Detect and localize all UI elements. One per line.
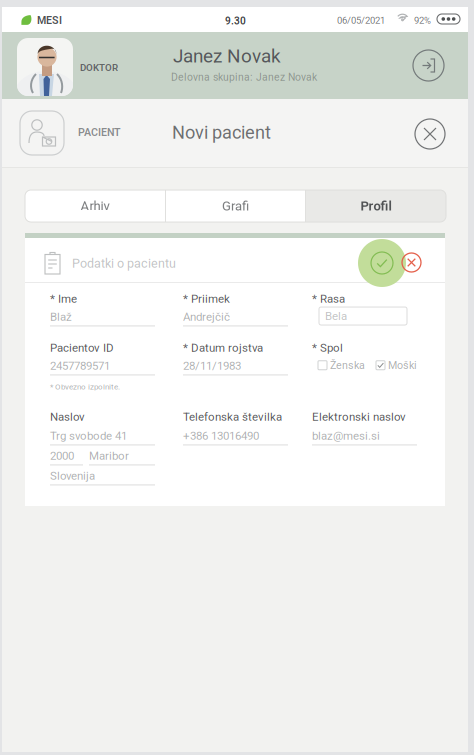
staticText: Maribor — [89, 449, 129, 462]
staticText: * Ime — [50, 292, 77, 305]
staticText: * Priimek — [183, 292, 230, 305]
staticText: DOKTOR — [80, 62, 118, 73]
staticText: * Rasa — [312, 292, 345, 305]
button[interactable]: Ženska — [318, 359, 365, 371]
staticText: 9.30 — [225, 15, 246, 27]
staticText: Bela — [325, 309, 347, 323]
staticText: Andrejčič — [183, 310, 230, 323]
staticText: Profil — [360, 198, 391, 214]
staticText: Grafi — [222, 198, 249, 214]
button[interactable]: Close — [415, 119, 445, 149]
button[interactable]: Grafi — [166, 190, 305, 222]
staticText: Pacientov ID — [50, 341, 114, 354]
button[interactable]: Cancel — [402, 253, 421, 272]
staticText: Trg svobode 41 — [50, 429, 127, 442]
staticText: * Obvezno izpolnite. — [50, 382, 120, 391]
staticText: Novi pacient — [172, 122, 271, 143]
staticText: MESI — [37, 14, 62, 26]
staticText: 28/11/1983 — [183, 359, 241, 372]
button[interactable]: Arhiv — [25, 190, 165, 222]
button[interactable]: Profil — [306, 190, 446, 222]
staticText: Moški — [388, 359, 417, 371]
staticText: Delovna skupina: Janez Novak — [171, 71, 317, 83]
staticText: 92% — [414, 15, 431, 26]
staticText: Blaž — [50, 310, 72, 323]
staticText: Elektronski naslov — [312, 410, 406, 423]
staticText: PACIENT — [78, 126, 121, 138]
staticText: * Spol — [312, 341, 343, 354]
staticText: +386 13016490 — [183, 429, 259, 442]
staticText: blaz@mesi.si — [312, 429, 380, 442]
staticText: 2000 — [50, 449, 74, 462]
button[interactable]: Save — [358, 238, 406, 288]
staticText: Janez Novak — [173, 45, 281, 67]
staticText: 2457789571 — [50, 359, 110, 372]
button[interactable]: Moški — [376, 359, 417, 371]
staticText: 06/05/2021 — [337, 15, 385, 26]
staticText: * Datum rojstva — [183, 341, 263, 354]
staticText: Naslov — [50, 410, 85, 423]
staticText: Arhiv — [80, 198, 109, 214]
staticText: Ženska — [330, 359, 365, 371]
staticText: Slovenija — [50, 469, 95, 482]
staticText: Podatki o pacientu — [72, 256, 176, 271]
button[interactable]: Sign out — [413, 50, 444, 81]
staticText: Telefonska številka — [183, 410, 282, 423]
